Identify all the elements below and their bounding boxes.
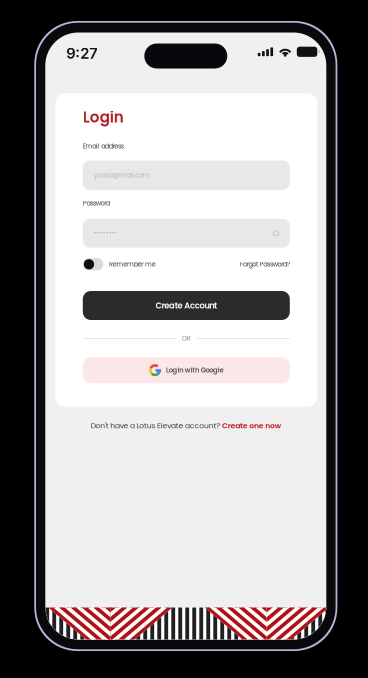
staticText: Login <box>83 107 124 128</box>
staticText: Remember me <box>109 260 156 269</box>
staticText: Create one now <box>222 420 281 431</box>
staticText: 9:27 <box>66 44 97 62</box>
button[interactable]: Login with Google <box>83 357 290 383</box>
button[interactable]: Forgot Password? <box>240 260 290 269</box>
staticText: •••••••• <box>94 228 118 238</box>
button[interactable]: Create one now <box>222 420 281 431</box>
staticText: OR <box>182 334 191 343</box>
staticText: your.id@mail.com <box>94 171 150 180</box>
staticText: Forgot Password? <box>240 260 290 269</box>
staticText: Don't have a Lotus Elevate account? <box>91 420 222 431</box>
staticText: Password <box>83 199 110 208</box>
staticText: Create Account <box>156 300 217 311</box>
button[interactable]: Create Account <box>83 291 290 320</box>
staticText: Email address <box>83 142 124 151</box>
button[interactable]: Remember me <box>83 258 156 270</box>
staticText: Login with Google <box>166 365 224 375</box>
